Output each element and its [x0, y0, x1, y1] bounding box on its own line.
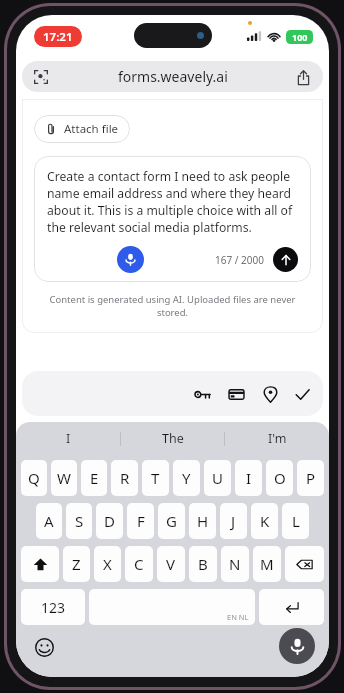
staticText: Create a contact form I need to ask peop… [47, 168, 298, 236]
staticText: 167 / 2000 [215, 253, 264, 267]
staticText: S [75, 511, 84, 531]
button[interactable]: The [121, 422, 225, 455]
button[interactable]: 123 [21, 589, 85, 625]
staticText: I [66, 430, 71, 447]
staticText: E [90, 468, 99, 488]
button[interactable]: T [142, 460, 169, 496]
button[interactable]: Enter [259, 589, 324, 625]
staticText: G [166, 511, 177, 531]
staticText: Q [28, 468, 40, 488]
button[interactable]: Passwords [185, 377, 219, 411]
button[interactable]: I [235, 460, 262, 496]
staticText: Content is generated using AI. Uploaded … [44, 293, 301, 319]
button[interactable]: U [204, 460, 231, 496]
staticText: N [229, 554, 241, 574]
button[interactable]: C [125, 546, 153, 582]
staticText: P [306, 468, 316, 488]
staticText: O [274, 468, 286, 488]
button[interactable]: M [253, 546, 281, 582]
staticText: A [44, 511, 54, 531]
button[interactable]: V [157, 546, 185, 582]
button[interactable]: Y [173, 460, 200, 496]
button[interactable]: Payment methods [219, 377, 253, 411]
button[interactable]: F [127, 503, 154, 539]
button[interactable]: Search with Lens [22, 61, 323, 92]
button[interactable]: Voice typing [279, 628, 315, 664]
staticText: F [137, 511, 145, 531]
staticText: H [197, 511, 209, 531]
button[interactable]: A [36, 503, 62, 539]
button[interactable]: D [96, 503, 123, 539]
button[interactable]: I [16, 422, 121, 455]
staticText: T [151, 468, 160, 488]
button[interactable]: X [94, 546, 121, 582]
button[interactable]: O [266, 460, 293, 496]
staticText: X [103, 554, 112, 574]
button[interactable]: K [251, 503, 278, 539]
button[interactable]: Voice input [117, 246, 144, 273]
button[interactable]: Attach file [34, 115, 130, 143]
button[interactable]: Space [89, 589, 255, 625]
button[interactable]: E [81, 460, 107, 496]
staticText: B [198, 554, 208, 574]
button[interactable]: J [220, 503, 247, 539]
button[interactable]: H [189, 503, 216, 539]
staticText: L [292, 511, 300, 531]
staticText: The [162, 430, 184, 447]
button[interactable]: Emoji [32, 635, 56, 659]
button[interactable]: Shift [21, 546, 59, 582]
button[interactable]: P [297, 460, 324, 496]
staticText: Attach file [64, 121, 119, 137]
staticText: 100 [292, 31, 308, 43]
button[interactable]: I'm [225, 422, 329, 455]
staticText: R [120, 468, 130, 488]
staticText: D [104, 511, 115, 531]
staticText: I [246, 468, 252, 488]
staticText: K [260, 511, 270, 531]
staticText: J [231, 511, 236, 531]
button[interactable]: Z [63, 546, 90, 582]
staticText: Y [182, 468, 191, 488]
staticText: Z [72, 554, 81, 574]
button[interactable]: S [66, 503, 92, 539]
button[interactable]: G [158, 503, 185, 539]
staticText: U [212, 468, 223, 488]
button[interactable]: B [189, 546, 217, 582]
staticText: EN NL [227, 612, 249, 622]
staticText: I'm [268, 430, 287, 447]
button[interactable]: Search with Lens [31, 67, 51, 87]
button[interactable]: R [111, 460, 138, 496]
button[interactable]: Share [293, 67, 313, 87]
staticText: M [260, 554, 274, 574]
button[interactable]: Q [21, 460, 47, 496]
staticText: 17:21 [43, 29, 73, 45]
button[interactable]: L [282, 503, 309, 539]
button[interactable]: Done [287, 377, 317, 411]
button[interactable]: W [51, 460, 77, 496]
button[interactable]: N [221, 546, 249, 582]
button[interactable]: Send [273, 247, 298, 272]
staticText: W [57, 468, 71, 488]
staticText: V [166, 554, 176, 574]
staticText: 123 [41, 598, 66, 617]
button[interactable]: Backspace [285, 546, 324, 582]
staticText: forms.weavely.ai [118, 67, 228, 86]
staticText: C [134, 554, 144, 574]
button[interactable]: Create a contact form I need to ask peop… [34, 156, 311, 282]
button[interactable]: Addresses [253, 377, 287, 411]
